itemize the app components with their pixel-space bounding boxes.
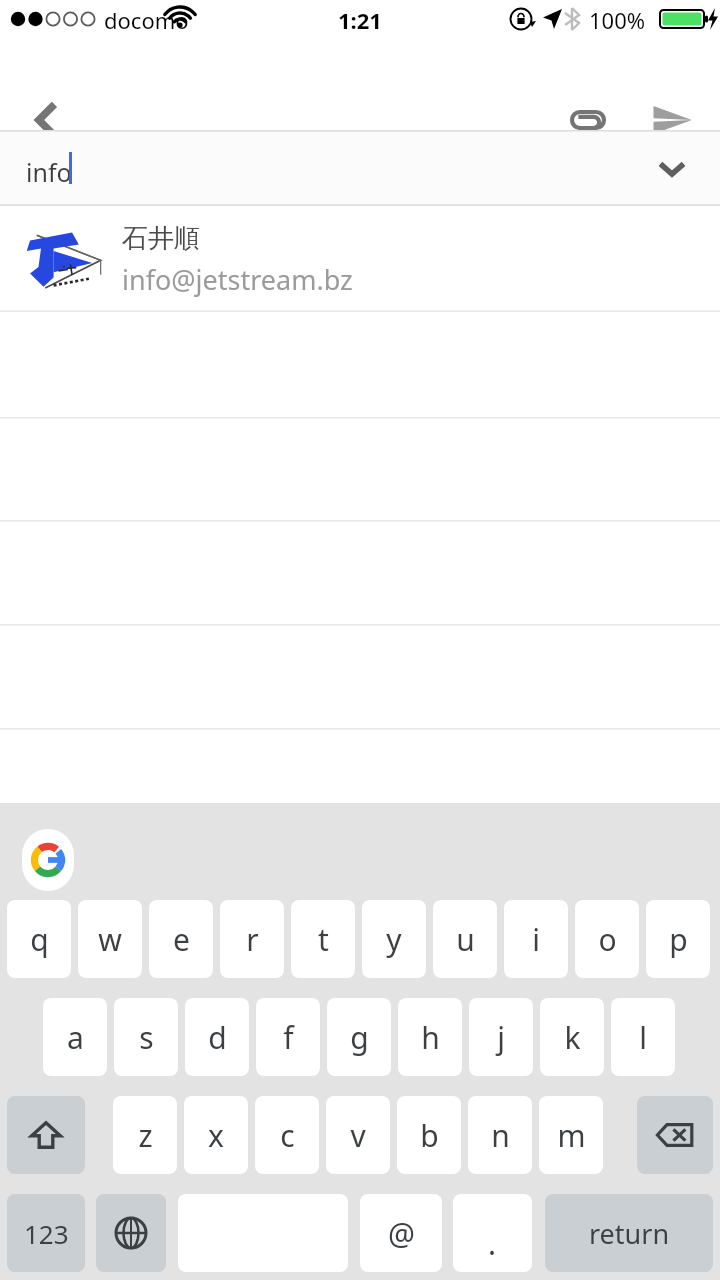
button[interactable]: k (540, 998, 604, 1076)
staticText: p (669, 919, 688, 960)
staticText: g (350, 1017, 369, 1058)
button[interactable]: p (646, 900, 710, 978)
staticText: u (456, 919, 475, 960)
button[interactable]: v (326, 1096, 390, 1174)
button[interactable]: At sign (360, 1194, 442, 1272)
staticText: v (350, 1115, 366, 1156)
staticText: e (173, 919, 190, 960)
button[interactable]: Change language (96, 1194, 166, 1272)
button[interactable]: w (78, 900, 142, 978)
staticText: j (497, 1017, 505, 1058)
staticText: i (532, 919, 540, 960)
button[interactable]: Google (22, 829, 74, 891)
staticText: z (138, 1115, 153, 1156)
button[interactable]: u (433, 900, 497, 978)
button[interactable]: j (469, 998, 533, 1076)
button[interactable]: t (291, 900, 355, 978)
button[interactable]: c (255, 1096, 319, 1174)
button[interactable]: h (398, 998, 462, 1076)
staticText: r (246, 919, 259, 960)
button[interactable]: Back (12, 84, 84, 156)
staticText: k (564, 1017, 581, 1058)
staticText: docomo (104, 5, 189, 35)
staticText: f (283, 1017, 294, 1058)
staticText: m (557, 1115, 586, 1156)
staticText: 100% (589, 5, 646, 35)
staticText: w (98, 919, 122, 960)
button[interactable]: e (149, 900, 213, 978)
button[interactable]: n (468, 1096, 532, 1174)
button[interactable]: Numbers (7, 1194, 85, 1272)
button[interactable]: s (114, 998, 178, 1076)
button[interactable]: d (185, 998, 249, 1076)
staticText: l (639, 1017, 647, 1058)
button[interactable]: Return (545, 1194, 713, 1272)
staticText: x (208, 1115, 224, 1156)
staticText: n (491, 1115, 510, 1156)
button[interactable]: q (7, 900, 71, 978)
staticText: t (318, 919, 329, 960)
button[interactable]: a (43, 998, 107, 1076)
button[interactable]: x (184, 1096, 248, 1174)
button[interactable]: info (0, 130, 720, 206)
staticText: info (26, 155, 72, 189)
button[interactable]: g (327, 998, 391, 1076)
button[interactable]: f (256, 998, 320, 1076)
staticText: . (488, 1223, 497, 1264)
button[interactable]: Period (453, 1194, 532, 1272)
staticText: q (30, 919, 49, 960)
button[interactable]: 石井順 (0, 206, 720, 312)
button[interactable]: o (575, 900, 639, 978)
staticText: y (386, 919, 402, 960)
staticText: h (421, 1017, 440, 1058)
button[interactable]: l (611, 998, 675, 1076)
button[interactable]: Shift (7, 1096, 85, 1174)
button[interactable]: Send (636, 84, 708, 156)
staticText: o (598, 919, 617, 960)
staticText: 123 (24, 1216, 69, 1251)
button[interactable]: b (397, 1096, 461, 1174)
button[interactable]: Attach file (552, 84, 624, 156)
button[interactable]: i (504, 900, 568, 978)
button[interactable]: y (362, 900, 426, 978)
staticText: 石井順 (122, 222, 200, 255)
button[interactable]: m (539, 1096, 603, 1174)
staticText: c (280, 1115, 295, 1156)
staticText: info@jetstream.bz (122, 261, 353, 298)
button[interactable]: r (220, 900, 284, 978)
staticText: b (420, 1115, 439, 1156)
button[interactable]: Backspace (637, 1096, 713, 1174)
staticText: d (208, 1017, 227, 1058)
staticText: return (589, 1215, 670, 1252)
button[interactable]: Expand recipients (636, 132, 708, 204)
button[interactable]: z (113, 1096, 177, 1174)
staticText: s (139, 1017, 154, 1058)
staticText: 1:21 (338, 5, 382, 35)
staticText: a (67, 1017, 84, 1058)
staticText: @ (388, 1213, 415, 1254)
